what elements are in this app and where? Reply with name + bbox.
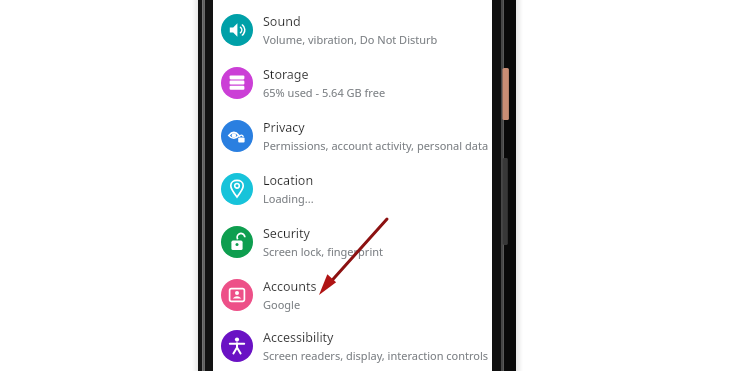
staticText: Google [263, 297, 301, 312]
button[interactable]: Privacy [213, 109, 492, 162]
staticText: Privacy [263, 119, 305, 136]
staticText: Screen lock, fingerprint [263, 244, 384, 259]
staticText: Screen readers, display, interaction con… [263, 348, 489, 363]
staticText: Loading... [263, 191, 314, 206]
staticText: Volume, vibration, Do Not Disturb [263, 32, 438, 47]
staticText: Accounts [263, 278, 317, 295]
button[interactable]: Accounts [213, 268, 492, 321]
staticText: 65% used - 5.64 GB free [263, 85, 386, 100]
staticText: Permissions, account activity, personal … [263, 138, 489, 153]
staticText: Location [263, 172, 314, 189]
button[interactable]: Location [213, 162, 492, 215]
staticText: Security [263, 225, 310, 242]
staticText: Sound [263, 13, 301, 30]
button[interactable]: Security [213, 215, 492, 268]
button[interactable]: Sound [213, 3, 492, 56]
staticText: Storage [263, 66, 309, 83]
button[interactable]: Storage [213, 56, 492, 109]
staticText: Accessibility [263, 329, 334, 346]
button[interactable]: Accessibility [213, 321, 492, 371]
